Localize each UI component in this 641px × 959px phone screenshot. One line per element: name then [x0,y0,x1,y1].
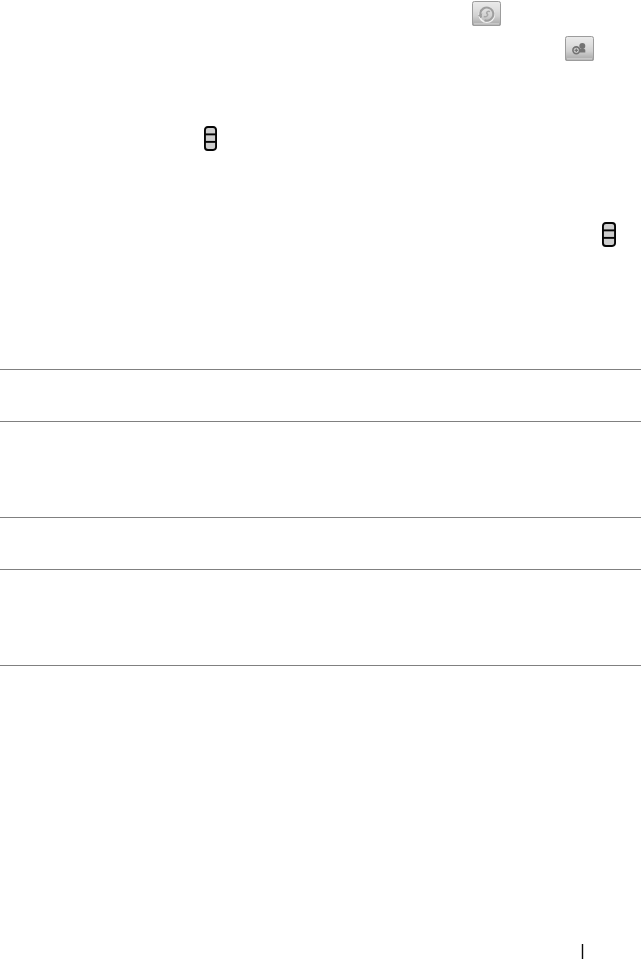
button[interactable]: Refresh [472,1,501,26]
other: Image not loaded [204,126,217,151]
other: Image not loaded [602,222,616,247]
button[interactable]: Add person [565,36,594,61]
button[interactable]: Text field [560,938,608,959]
